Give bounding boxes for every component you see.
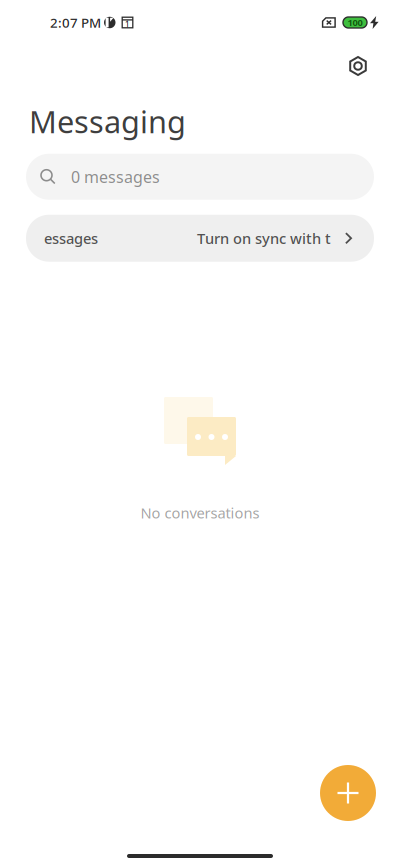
staticText: Messaging [29, 101, 186, 142]
staticText: 2:07 PM [50, 14, 101, 31]
button[interactable]: essages [26, 215, 374, 262]
staticText: 100 [347, 16, 362, 29]
staticText: essages [44, 228, 98, 248]
button[interactable]: New conversation [320, 765, 376, 821]
button[interactable]: Settings [338, 46, 378, 86]
button[interactable]: 0 messages [26, 154, 374, 200]
staticText: 0 messages [71, 166, 160, 187]
staticText: Turn on sync with t [197, 228, 331, 248]
staticText: 1 [125, 19, 130, 30]
staticText: No conversations [140, 503, 259, 522]
